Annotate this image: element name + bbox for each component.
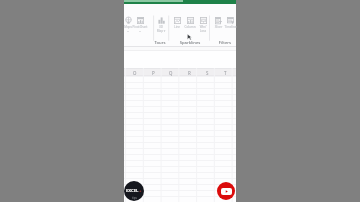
staticText: Maps — [123, 25, 133, 29]
staticText: Timeline — [223, 25, 238, 29]
staticText: Win/ Loss — [197, 25, 209, 33]
button[interactable]: Line — [171, 4, 183, 29]
staticText: tips — [132, 196, 137, 200]
button[interactable]: Slicer — [212, 4, 225, 29]
staticText: 3D Map ▾ — [155, 25, 167, 33]
staticText: Tours — [140, 40, 180, 46]
staticText: Filters — [205, 40, 245, 46]
button[interactable]: Subscribe on YouTube — [217, 182, 235, 200]
button[interactable]: Win/ Loss — [197, 4, 209, 33]
staticText: PivotChart — [131, 25, 149, 29]
staticText: Q — [169, 70, 173, 76]
button[interactable]: Channel avatar — [124, 181, 144, 201]
staticText: T — [224, 70, 227, 76]
staticText: + — [139, 188, 142, 194]
button[interactable]: Maps — [123, 4, 133, 32]
button[interactable]: PivotChart — [131, 4, 149, 32]
button[interactable]: Timeline — [223, 4, 238, 29]
staticText: Sparklines — [170, 40, 210, 46]
staticText: Column — [183, 25, 197, 29]
staticText: Slicer — [212, 25, 225, 29]
staticText: EXCEL — [126, 188, 139, 194]
staticText: P — [152, 70, 155, 76]
button[interactable]: Column — [183, 4, 197, 29]
staticText: O — [133, 70, 137, 76]
button[interactable]: 3D Map ▾ — [155, 4, 167, 33]
staticText: S — [206, 70, 209, 76]
staticText: R — [188, 70, 191, 76]
staticText: Line — [171, 25, 183, 29]
